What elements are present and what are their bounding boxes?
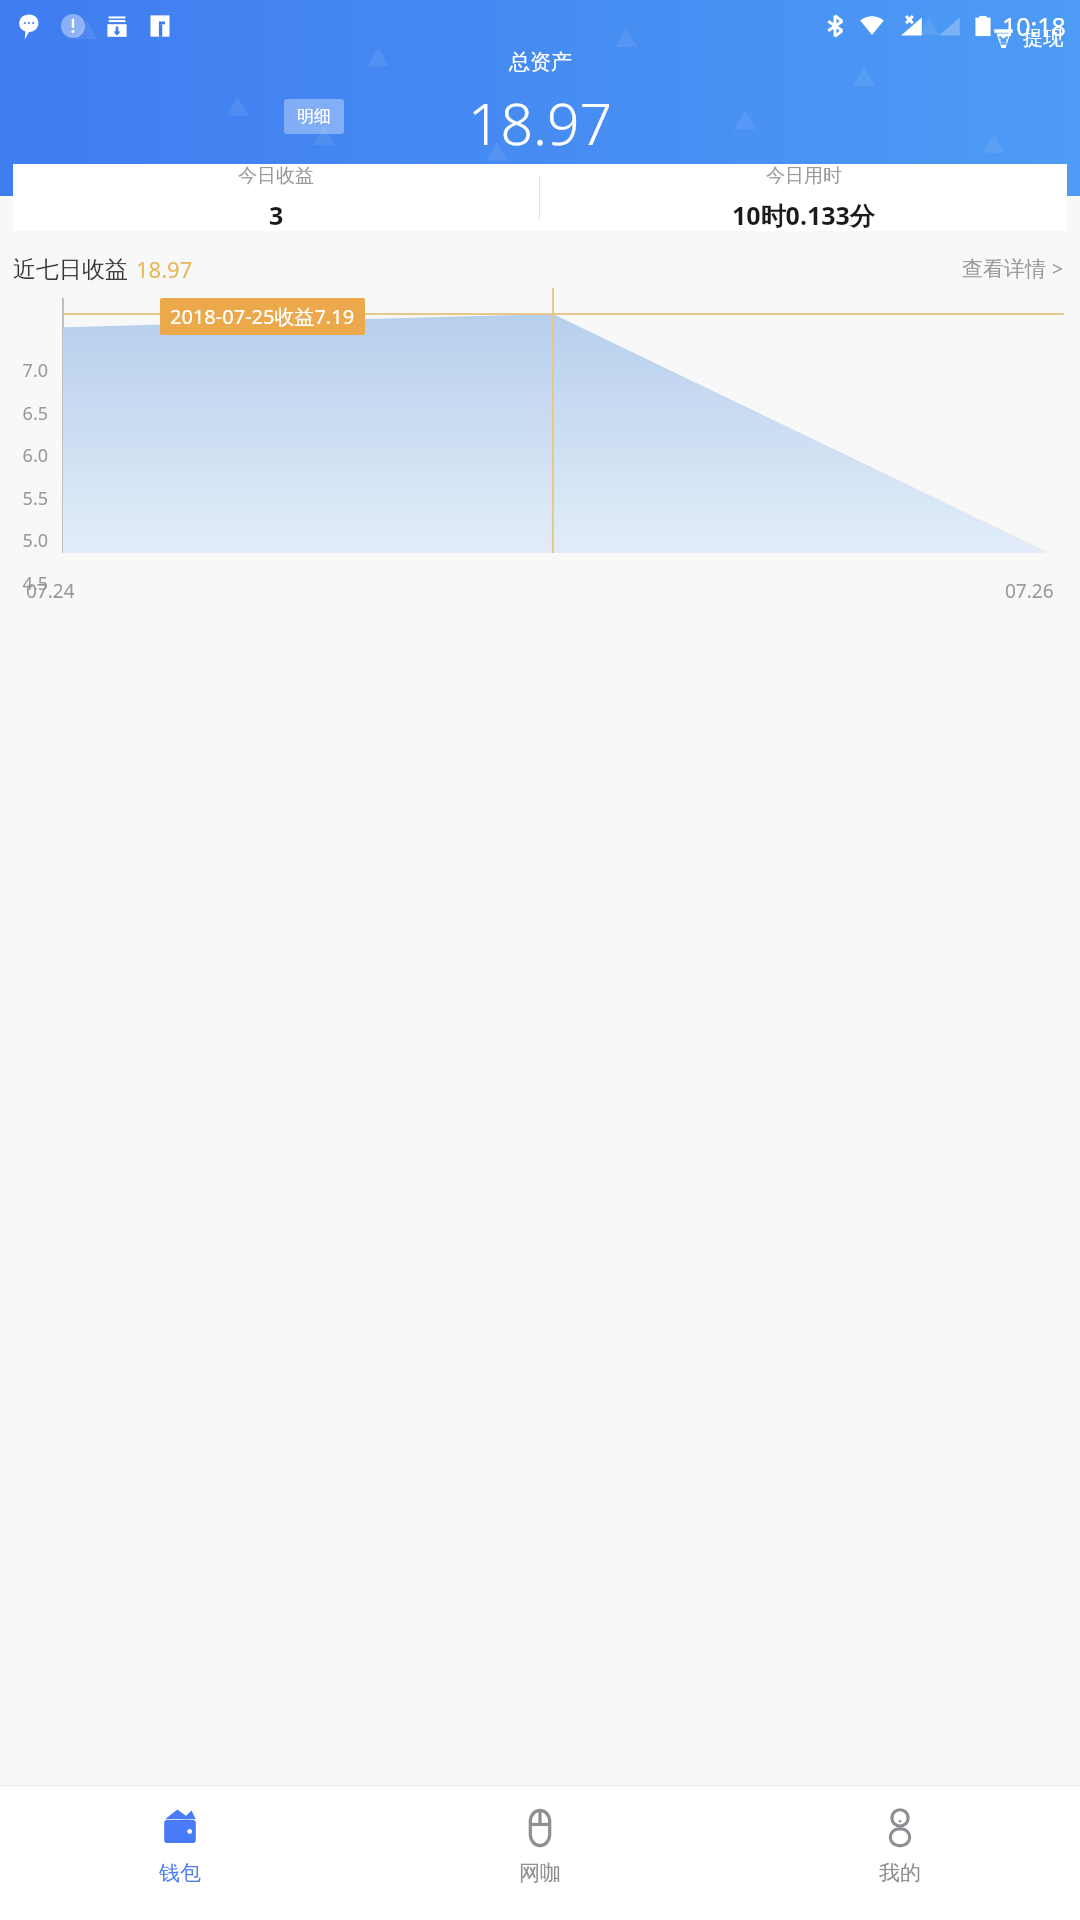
other: 我的: [878, 1806, 922, 1850]
staticText: 10:18: [1002, 9, 1066, 43]
button[interactable]: 今日用时: [540, 164, 1067, 231]
button[interactable]: 钱包: [0, 1786, 360, 1920]
staticText: 07.26: [1005, 578, 1054, 604]
staticText: 5.0: [0, 528, 48, 553]
staticText: 07.24: [26, 578, 75, 604]
button[interactable]: 明细: [284, 99, 344, 134]
staticText: 4.5: [0, 571, 48, 596]
staticText: 钱包: [159, 1860, 201, 1886]
staticText: 今日收益: [238, 164, 314, 188]
staticText: 7.0: [0, 358, 48, 383]
staticText: 近七日收益: [13, 255, 128, 284]
staticText: 18.97: [136, 254, 193, 284]
button[interactable]: 提现: [989, 22, 1067, 55]
button[interactable]: 我的: [720, 1786, 1080, 1920]
staticText: >: [1052, 256, 1063, 282]
staticText: 5.5: [0, 486, 48, 511]
button[interactable]: 2018-07-25收益7.19: [160, 298, 365, 335]
staticText: 18.97: [468, 84, 613, 162]
staticText: 2018-07-25收益7.19: [170, 303, 355, 330]
staticText: 我的: [879, 1860, 921, 1886]
staticText: 网咖: [519, 1860, 561, 1886]
staticText: 3: [269, 198, 284, 231]
other: 网咖: [518, 1806, 562, 1850]
other: 钱包: [158, 1806, 202, 1850]
staticText: 6.5: [0, 401, 48, 426]
button[interactable]: 近七日收益: [13, 254, 193, 284]
staticText: 明细: [297, 106, 331, 127]
staticText: 10时0.133分: [732, 198, 875, 231]
staticText: 6.0: [0, 443, 48, 468]
button[interactable]: 查看详情: [958, 252, 1067, 286]
staticText: 今日用时: [766, 164, 842, 188]
button[interactable]: 网咖: [360, 1786, 720, 1920]
staticText: 查看详情: [962, 256, 1046, 282]
button[interactable]: 今日收益: [13, 164, 539, 231]
staticText: 提现: [1023, 26, 1063, 51]
staticText: 总资产: [509, 49, 572, 75]
